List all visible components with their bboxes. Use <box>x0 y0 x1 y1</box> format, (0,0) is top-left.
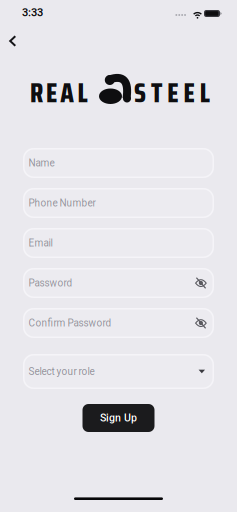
staticText: S <box>134 72 146 114</box>
staticText: L <box>77 72 87 114</box>
staticText: L <box>200 72 210 114</box>
button[interactable]: Show password <box>193 315 209 330</box>
staticText: E <box>167 72 178 114</box>
button[interactable]: Password <box>23 268 214 298</box>
staticText: Sign Up <box>100 412 137 424</box>
staticText: Confirm Password <box>28 317 111 329</box>
staticText: Name <box>28 157 54 169</box>
button[interactable]: Phone Number <box>23 188 214 218</box>
staticText: E <box>183 72 194 114</box>
button[interactable]: Sign Up <box>82 404 154 432</box>
button[interactable]: Show password <box>193 275 209 290</box>
button[interactable]: Back <box>0 29 17 53</box>
button[interactable]: Confirm Password <box>23 308 214 338</box>
staticText: T <box>151 72 162 114</box>
staticText: E <box>46 72 57 114</box>
staticText: Password <box>28 277 72 289</box>
staticText: Email <box>28 237 52 249</box>
staticText: 3:33 <box>22 6 43 19</box>
button[interactable]: Select your role <box>23 354 214 389</box>
button[interactable]: Email <box>23 228 214 258</box>
staticText: R <box>30 72 43 114</box>
button[interactable]: Name <box>23 148 214 178</box>
staticText: Phone Number <box>28 197 95 209</box>
staticText: Select your role <box>28 366 94 377</box>
staticText: A <box>60 72 74 114</box>
